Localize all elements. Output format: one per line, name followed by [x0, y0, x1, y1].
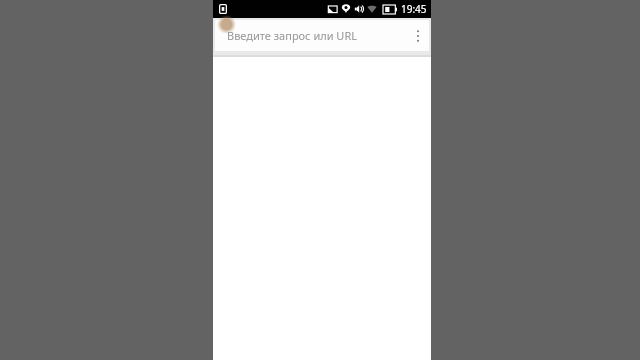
button[interactable]: Введите запрос или URL: [215, 20, 429, 51]
staticText: 19:45: [401, 2, 427, 16]
button[interactable]: More options: [407, 20, 429, 51]
staticText: Введите запрос или URL: [227, 28, 407, 43]
